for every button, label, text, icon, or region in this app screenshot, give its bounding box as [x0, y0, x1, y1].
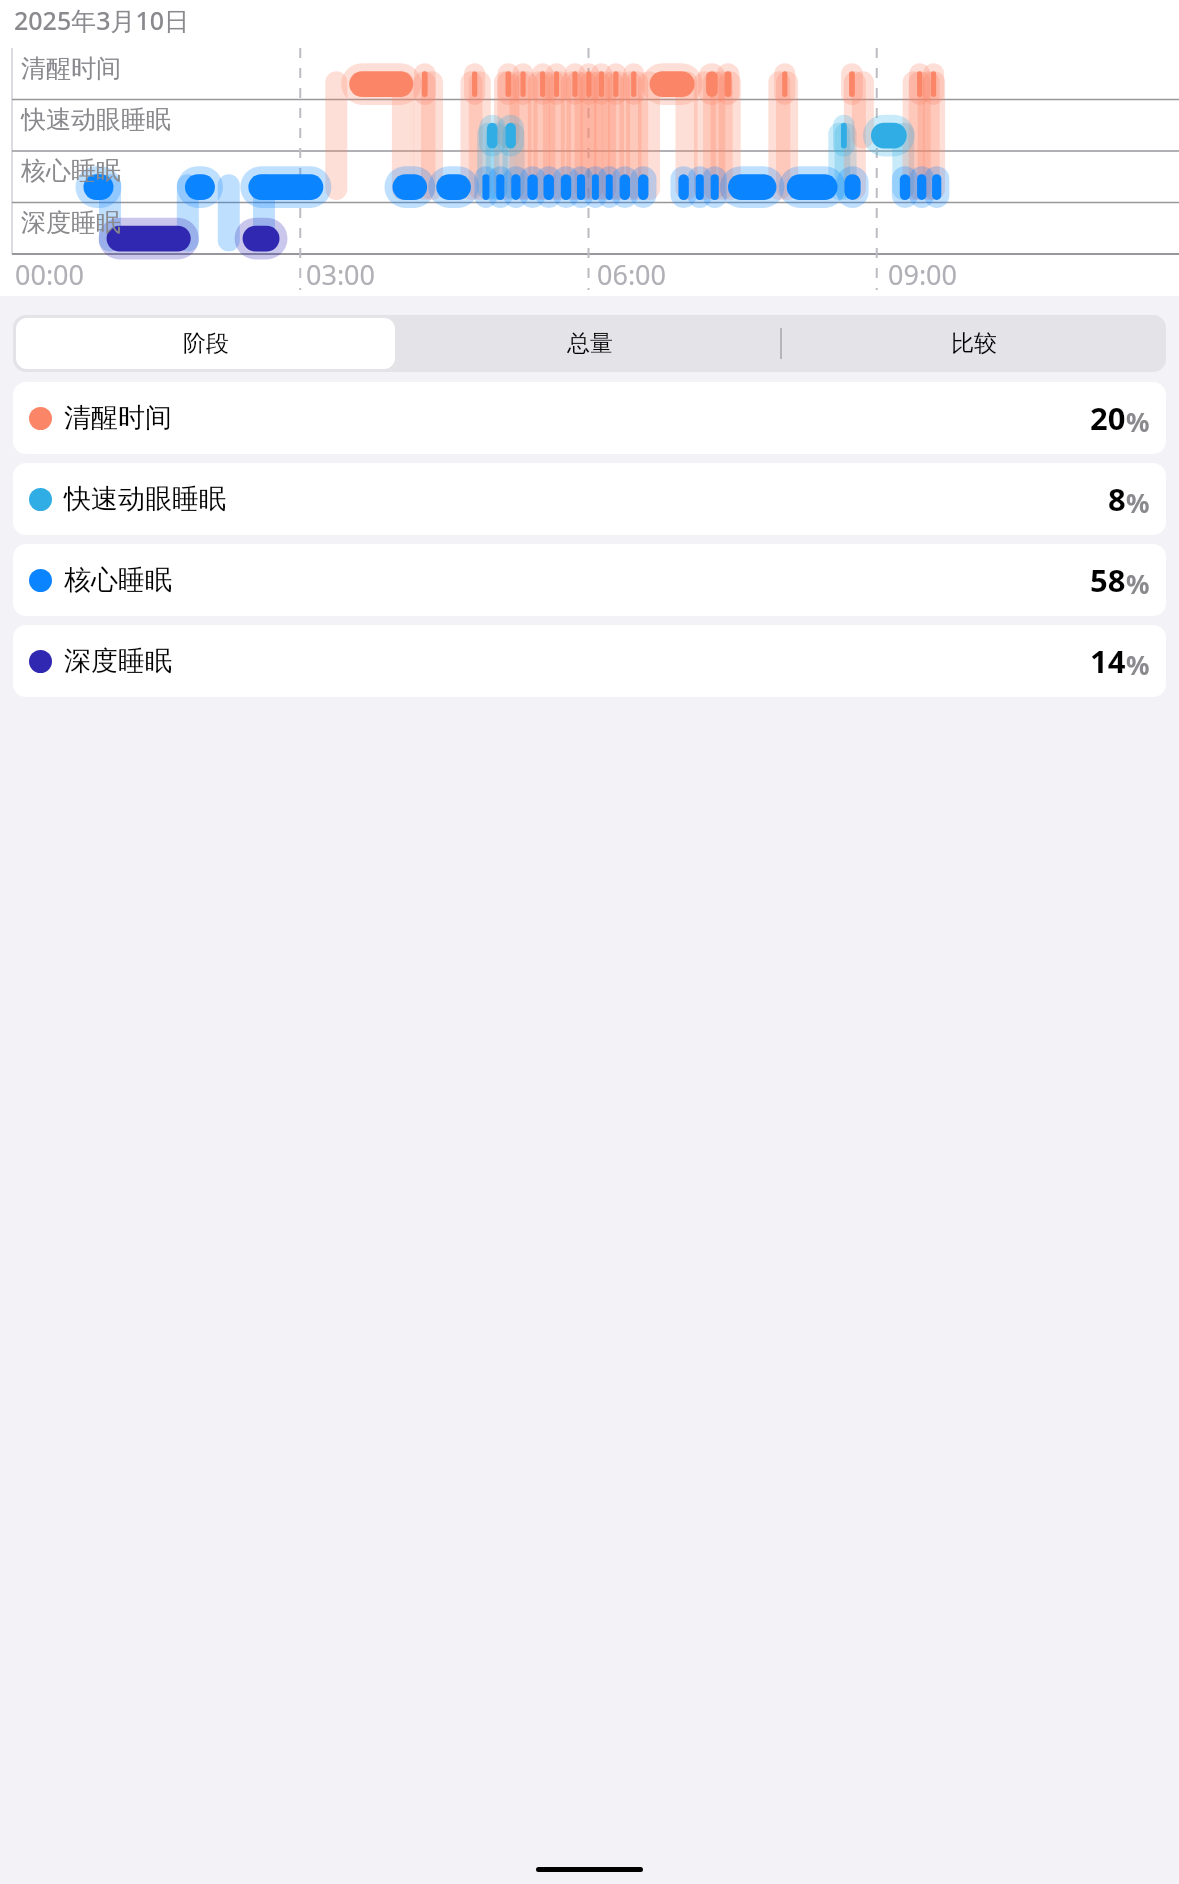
button[interactable]: 深度睡眠: [13, 625, 1166, 697]
button[interactable]: 比较: [785, 318, 1163, 369]
staticText: 58: [1090, 559, 1126, 601]
button[interactable]: 阶段: [16, 318, 395, 369]
staticText: 20: [1090, 397, 1126, 439]
staticText: 总量: [567, 329, 613, 358]
staticText: 06:00: [597, 256, 667, 293]
staticText: 核心睡眠: [21, 155, 121, 186]
button[interactable]: 清醒时间: [13, 382, 1166, 454]
staticText: 2025年3月10日: [14, 3, 190, 37]
staticText: 阶段: [183, 329, 229, 358]
staticText: 深度睡眠: [21, 207, 121, 238]
button[interactable]: 总量: [401, 318, 779, 369]
staticText: %: [1126, 647, 1150, 682]
staticText: 快速动眼睡眠: [64, 482, 226, 516]
staticText: 14: [1090, 640, 1126, 682]
staticText: %: [1126, 566, 1150, 601]
staticText: 00:00: [15, 256, 85, 293]
staticText: %: [1126, 485, 1150, 520]
staticText: 清醒时间: [64, 401, 172, 435]
staticText: 核心睡眠: [64, 563, 172, 597]
staticText: 清醒时间: [21, 53, 121, 84]
staticText: 09:00: [888, 256, 958, 293]
button[interactable]: 快速动眼睡眠: [13, 463, 1166, 535]
staticText: 03:00: [306, 256, 376, 293]
staticText: 8: [1108, 478, 1126, 520]
staticText: 比较: [951, 329, 997, 358]
staticText: 快速动眼睡眠: [21, 104, 171, 135]
staticText: %: [1126, 404, 1150, 439]
staticText: 深度睡眠: [64, 644, 172, 678]
button[interactable]: 核心睡眠: [13, 544, 1166, 616]
